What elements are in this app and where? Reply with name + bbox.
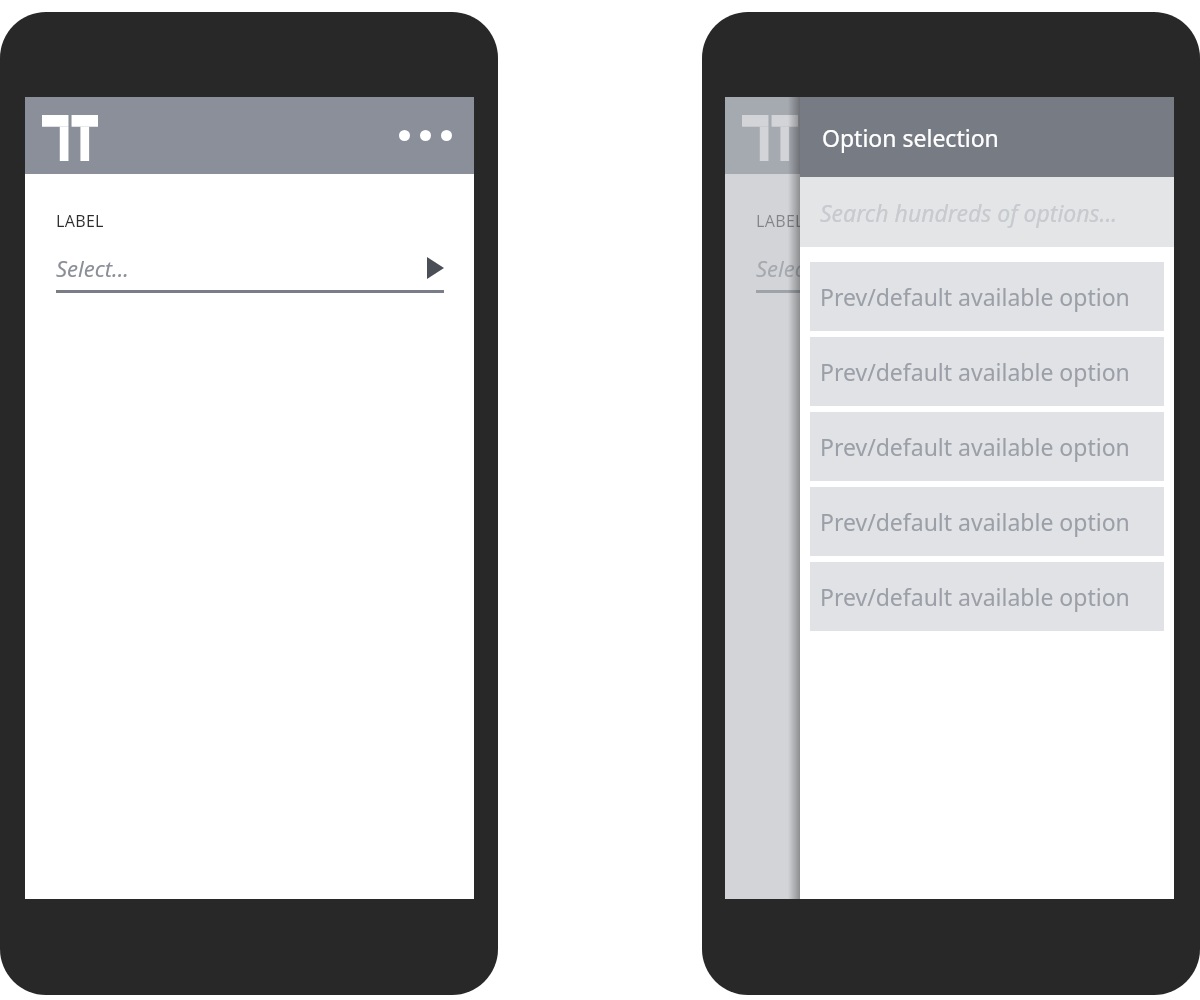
staticText: LABEL (56, 210, 104, 232)
staticText: Prev/default available option (820, 431, 1130, 462)
button[interactable]: More options (385, 116, 466, 155)
staticText: Prev/default available option (820, 356, 1130, 387)
staticText: Prev/default available option (820, 281, 1130, 312)
staticText: Select... (56, 253, 129, 283)
staticText: Search hundreds of options... (820, 197, 1118, 228)
button[interactable]: Prev/default available option (810, 487, 1164, 556)
staticText: Prev/default available option (820, 581, 1130, 612)
staticText: Select... (756, 253, 829, 283)
button[interactable]: Select... (756, 246, 1144, 290)
staticText: Option selection (822, 122, 999, 153)
staticText: LABEL (756, 210, 804, 232)
button[interactable]: Prev/default available option (810, 337, 1164, 406)
button[interactable]: Prev/default available option (810, 412, 1164, 481)
button[interactable]: Select... (56, 246, 444, 290)
button[interactable]: Prev/default available option (810, 262, 1164, 331)
staticText: Prev/default available option (820, 506, 1130, 537)
button[interactable]: Search hundreds of options... (800, 177, 1174, 247)
button[interactable]: Prev/default available option (810, 562, 1164, 631)
